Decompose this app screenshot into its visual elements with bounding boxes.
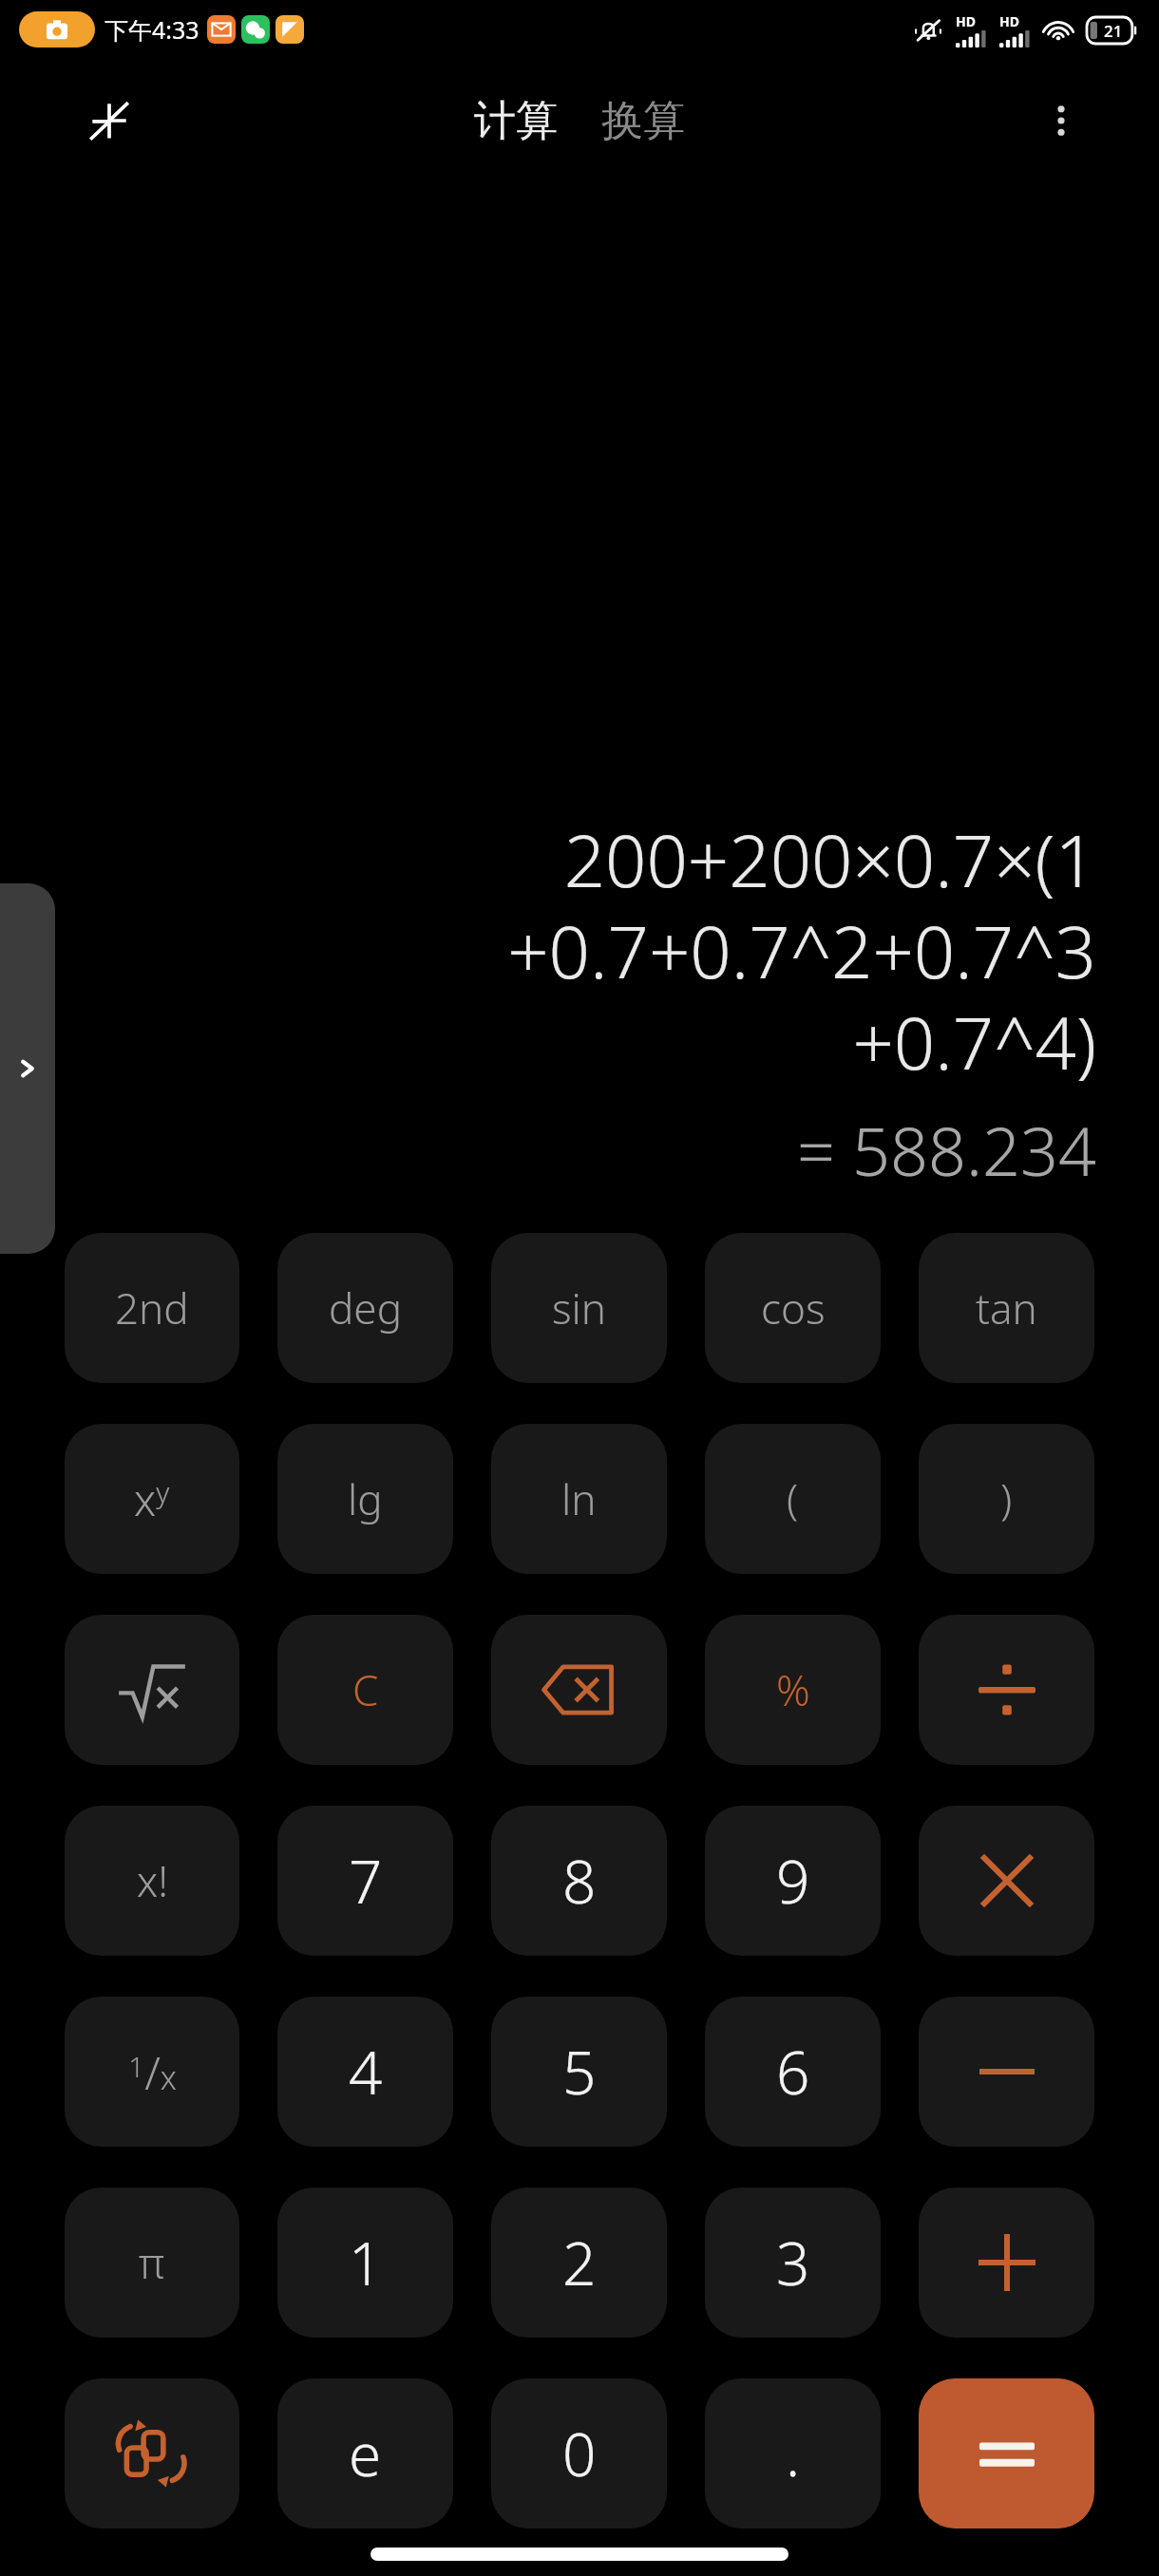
button[interactable]: C — [277, 1615, 453, 1765]
staticText: 200+200×0.7×(1 +0.7+0.7^2+0.7^3 +0.7^4) — [507, 810, 1096, 1091]
button[interactable]: 9 — [705, 1806, 881, 1956]
button[interactable]: Subtract — [919, 1997, 1094, 2147]
button[interactable]: 计算 — [465, 89, 567, 153]
staticText: xy — [134, 1469, 170, 1529]
staticText: 7 — [349, 1841, 383, 1921]
button[interactable]: π — [65, 2188, 239, 2338]
staticText: sin — [552, 1279, 606, 1336]
button[interactable]: lg — [277, 1424, 453, 1574]
staticText: C — [352, 1661, 379, 1718]
button[interactable]: 2 — [491, 2188, 667, 2338]
staticText: ln — [561, 1470, 597, 1527]
button[interactable]: Power — [65, 1424, 239, 1574]
button[interactable]: ln — [491, 1424, 667, 1574]
button[interactable]: Open history — [0, 883, 55, 1254]
staticText: ) — [1000, 1470, 1013, 1527]
staticText: 6 — [776, 2032, 810, 2112]
button[interactable]: Square root — [65, 1615, 239, 1765]
staticText: 2 — [562, 2223, 597, 2302]
staticText: 1/x — [128, 2041, 177, 2103]
button[interactable]: % — [705, 1615, 881, 1765]
button[interactable]: Add — [919, 2188, 1094, 2338]
staticText: 21 — [1104, 20, 1123, 42]
button[interactable]: 5 — [491, 1997, 667, 2147]
button[interactable]: ( — [705, 1424, 881, 1574]
staticText: π — [139, 2234, 165, 2291]
staticText: HD — [956, 12, 976, 30]
button[interactable]: 3 — [705, 2188, 881, 2338]
staticText: 计算 — [474, 95, 558, 147]
button[interactable]: tan — [919, 1233, 1094, 1383]
staticText: . — [786, 2414, 801, 2493]
staticText: 5 — [562, 2032, 597, 2112]
button[interactable]: Delete — [491, 1615, 667, 1765]
button[interactable]: e — [277, 2378, 453, 2529]
button[interactable]: 7 — [277, 1806, 453, 1956]
staticText: HD — [999, 12, 1019, 30]
button[interactable]: 1 — [277, 2188, 453, 2338]
staticText: 换算 — [601, 95, 685, 147]
button[interactable]: sin — [491, 1233, 667, 1383]
button[interactable]: 6 — [705, 1997, 881, 2147]
button[interactable]: 4 — [277, 1997, 453, 2147]
button[interactable]: ) — [919, 1424, 1094, 1574]
button[interactable]: 换算 — [592, 89, 694, 153]
button[interactable]: x! — [65, 1806, 239, 1956]
button[interactable]: Collapse — [76, 87, 142, 154]
button[interactable]: More options — [1028, 87, 1094, 154]
button[interactable]: Divide — [919, 1615, 1094, 1765]
staticText: 1 — [349, 2223, 383, 2302]
staticText: 下午4:33 — [104, 13, 199, 46]
staticText: cos — [761, 1279, 826, 1336]
button[interactable]: 8 — [491, 1806, 667, 1956]
staticText: deg — [329, 1279, 402, 1336]
staticText: x! — [137, 1852, 168, 1909]
staticText: 2nd — [115, 1279, 189, 1336]
staticText: 8 — [562, 1841, 597, 1921]
staticText: ( — [787, 1470, 799, 1527]
staticText: 4 — [349, 2032, 383, 2112]
button[interactable]: . — [705, 2378, 881, 2529]
button[interactable]: deg — [277, 1233, 453, 1383]
staticText: 0 — [562, 2414, 597, 2493]
button[interactable]: 2nd — [65, 1233, 239, 1383]
button[interactable]: Equals — [919, 2378, 1094, 2529]
button[interactable]: Reciprocal — [65, 1997, 239, 2147]
staticText: 9 — [776, 1841, 810, 1921]
staticText: lg — [348, 1470, 383, 1527]
staticText: tan — [976, 1279, 1037, 1336]
button[interactable]: Multiply — [919, 1806, 1094, 1956]
button[interactable]: 0 — [491, 2378, 667, 2529]
staticText: 3 — [776, 2223, 810, 2302]
staticText: e — [349, 2414, 382, 2493]
button[interactable]: Convert — [65, 2378, 239, 2529]
staticText: % — [776, 1661, 810, 1718]
button[interactable]: cos — [705, 1233, 881, 1383]
staticText: = 588.234 — [796, 1105, 1096, 1195]
